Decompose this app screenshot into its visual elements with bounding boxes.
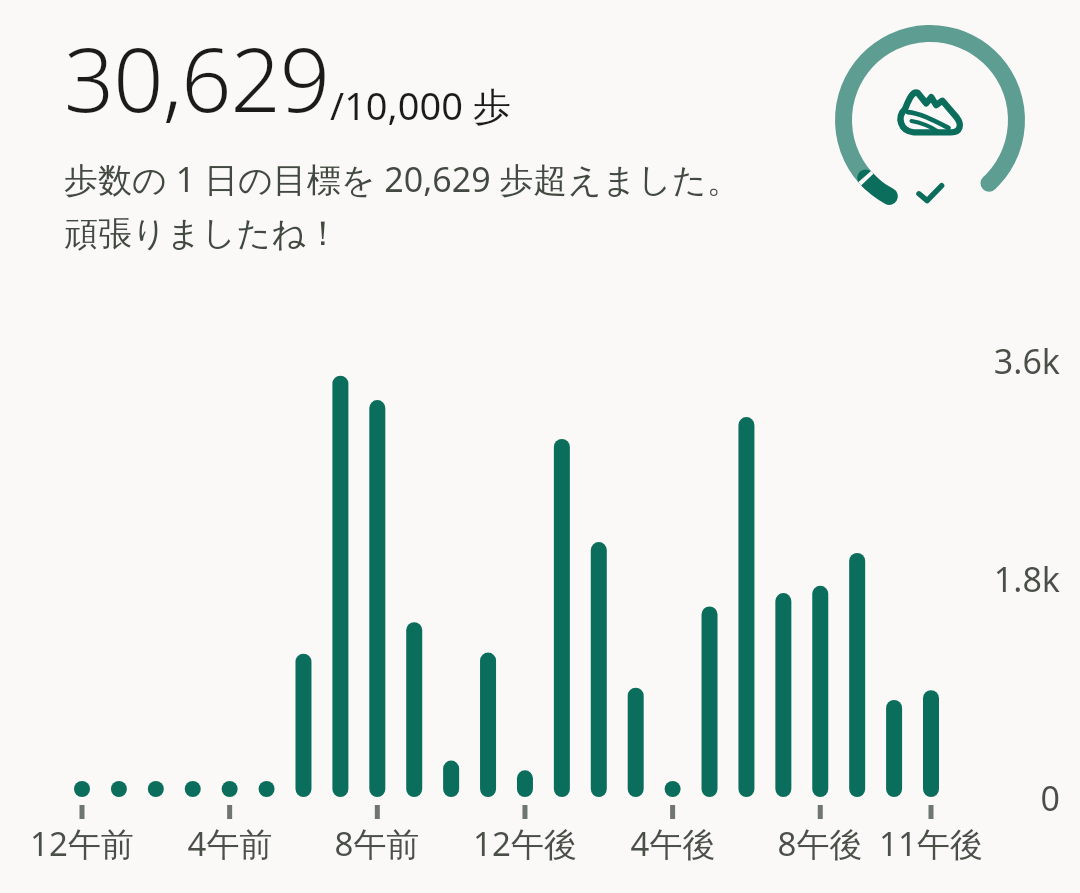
staticText: 30,629 [64,18,330,138]
staticText: 3.6k [978,338,1060,384]
button[interactable]: 3.6k [0,0,1080,893]
staticText: 12午後 [435,821,615,866]
staticText: 4午後 [583,821,763,866]
button[interactable]: Step goal progress [832,22,1028,218]
staticText: /10,000 歩 [330,79,511,131]
staticText: 8午前 [287,821,467,866]
staticText: 11午後 [841,821,1021,866]
staticText: 1.8k [978,556,1060,602]
staticText: 歩数の 1 日の目標を 20,629 歩超えました。頑張りましたね！ [64,156,764,255]
staticText: 8午後 [730,821,910,866]
button[interactable]: 30,629 [64,18,784,255]
staticText: 12午前 [0,821,172,866]
staticText: 0 [978,775,1060,821]
staticText: 4午前 [140,821,320,866]
